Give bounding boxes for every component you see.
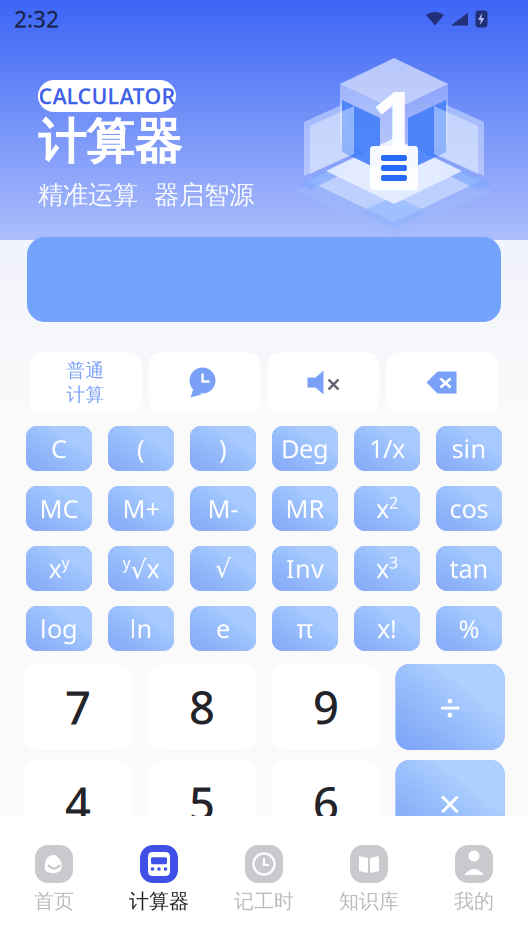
staticText: y bbox=[122, 552, 130, 573]
button[interactable]: cos bbox=[436, 486, 502, 531]
staticText: C bbox=[51, 432, 67, 465]
button[interactable]: ln bbox=[108, 606, 174, 651]
button[interactable]: ( bbox=[108, 426, 174, 471]
staticText: 2:32 bbox=[14, 4, 59, 34]
staticText: log bbox=[40, 612, 78, 645]
staticText: x bbox=[376, 552, 389, 585]
button[interactable]: MC bbox=[26, 486, 92, 531]
staticText: M+ bbox=[122, 492, 159, 525]
button[interactable]: sin bbox=[436, 426, 502, 471]
button[interactable]: 计算器 bbox=[106, 816, 211, 939]
staticText: Deg bbox=[281, 432, 329, 465]
button[interactable]: 7 bbox=[23, 664, 132, 750]
button[interactable]: 普通 bbox=[29, 352, 141, 413]
staticText: 8 bbox=[189, 677, 215, 737]
staticText: π bbox=[296, 612, 313, 645]
staticText: 3 bbox=[389, 552, 398, 573]
button[interactable]: y bbox=[108, 546, 174, 591]
button[interactable]: x bbox=[354, 546, 420, 591]
button[interactable]: e bbox=[190, 606, 256, 651]
button[interactable]: 9 bbox=[271, 664, 380, 750]
button[interactable]: MR bbox=[272, 486, 338, 531]
staticText: 7 bbox=[65, 677, 91, 737]
staticText: 6 bbox=[313, 773, 339, 833]
staticText: 1 bbox=[65, 869, 91, 929]
staticText: 5 bbox=[189, 773, 215, 833]
staticText: ) bbox=[219, 432, 227, 465]
staticText: 精准运算 器启智源 bbox=[38, 179, 254, 210]
button[interactable]: 我的 bbox=[421, 816, 526, 939]
button[interactable]: Mute bbox=[267, 352, 379, 413]
button[interactable]: 知识库 bbox=[316, 816, 421, 939]
button[interactable]: 5 bbox=[147, 760, 256, 846]
button[interactable]: Inv bbox=[272, 546, 338, 591]
staticText: x bbox=[48, 552, 61, 585]
staticText: ( bbox=[137, 432, 145, 465]
button[interactable]: 2 bbox=[147, 856, 256, 939]
staticText: Inv bbox=[286, 552, 324, 585]
button[interactable]: ÷ bbox=[395, 664, 504, 750]
staticText: 知识库 bbox=[339, 889, 399, 914]
staticText: MR bbox=[285, 492, 324, 525]
button[interactable]: C bbox=[26, 426, 92, 471]
staticText: 计算器 bbox=[129, 889, 189, 914]
staticText: 2 bbox=[389, 492, 398, 513]
staticText: ln bbox=[129, 612, 152, 645]
button[interactable]: 4 bbox=[23, 760, 132, 846]
staticText: − bbox=[438, 872, 461, 925]
button[interactable]: √ bbox=[190, 546, 256, 591]
button[interactable]: 8 bbox=[147, 664, 256, 750]
staticText: MC bbox=[39, 492, 78, 525]
staticText: 1 bbox=[370, 64, 417, 174]
staticText: 计算器 bbox=[38, 112, 182, 171]
button[interactable]: 1/x bbox=[354, 426, 420, 471]
staticText: 记工时 bbox=[234, 889, 294, 914]
button[interactable]: 6 bbox=[271, 760, 380, 846]
button[interactable]: ) bbox=[190, 426, 256, 471]
staticText: 4 bbox=[65, 773, 91, 833]
button[interactable]: π bbox=[272, 606, 338, 651]
button[interactable]: Deg bbox=[272, 426, 338, 471]
button[interactable]: M+ bbox=[108, 486, 174, 531]
staticText: √x bbox=[130, 552, 159, 585]
staticText: e bbox=[216, 612, 230, 645]
button[interactable]: × bbox=[395, 760, 504, 846]
staticText: CALCULATOR bbox=[38, 82, 175, 110]
staticText: x! bbox=[377, 612, 397, 645]
button[interactable]: x bbox=[26, 546, 92, 591]
button[interactable]: x bbox=[354, 486, 420, 531]
staticText: M- bbox=[207, 492, 238, 525]
staticText: cos bbox=[449, 492, 488, 525]
staticText: ÷ bbox=[438, 680, 461, 733]
button[interactable]: tan bbox=[436, 546, 502, 591]
staticText: 普通 bbox=[66, 359, 104, 382]
button[interactable]: M- bbox=[190, 486, 256, 531]
staticText: 9 bbox=[313, 677, 339, 737]
button[interactable]: x! bbox=[354, 606, 420, 651]
staticText: 我的 bbox=[454, 889, 494, 914]
button[interactable]: 1 bbox=[23, 856, 132, 939]
button[interactable]: 3 bbox=[271, 856, 380, 939]
staticText: × bbox=[438, 776, 461, 829]
staticText: % bbox=[458, 612, 479, 645]
staticText: 首页 bbox=[34, 889, 74, 914]
staticText: 1/x bbox=[369, 432, 405, 465]
staticText: tan bbox=[449, 552, 488, 585]
staticText: x bbox=[376, 492, 389, 525]
staticText: 计算 bbox=[66, 383, 104, 406]
staticText: y bbox=[61, 552, 69, 573]
staticText: √ bbox=[215, 554, 231, 583]
button[interactable]: % bbox=[436, 606, 502, 651]
staticText: sin bbox=[451, 432, 486, 465]
button[interactable]: 记工时 bbox=[211, 816, 316, 939]
button[interactable]: log bbox=[26, 606, 92, 651]
button[interactable]: 首页 bbox=[1, 816, 106, 939]
button[interactable]: − bbox=[395, 856, 504, 939]
button[interactable]: History bbox=[148, 352, 260, 413]
button[interactable]: Backspace bbox=[386, 352, 498, 413]
